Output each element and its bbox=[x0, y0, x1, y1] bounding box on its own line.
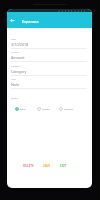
button[interactable]: EXIT bbox=[58, 162, 69, 170]
button[interactable]: SAVE bbox=[41, 162, 53, 170]
staticText: Date bbox=[11, 38, 16, 41]
button[interactable]: Date bbox=[11, 38, 87, 51]
button[interactable]: Monthly bbox=[59, 105, 74, 112]
staticText: Note bbox=[11, 82, 20, 87]
staticText: EXIT bbox=[60, 164, 67, 168]
staticText: Daily bbox=[20, 107, 26, 110]
staticText: Monthly bbox=[64, 107, 74, 110]
button[interactable]: Note bbox=[11, 78, 87, 91]
staticText: Amount bbox=[11, 51, 20, 54]
button[interactable]: Back bbox=[7, 13, 19, 27]
button[interactable]: DELETE bbox=[21, 162, 36, 170]
staticText: Note bbox=[11, 78, 17, 81]
staticText: 3/10/2018 bbox=[11, 42, 29, 47]
button[interactable]: Amount bbox=[11, 51, 87, 64]
staticText: Amount bbox=[11, 55, 25, 60]
staticText: Category bbox=[11, 69, 27, 74]
staticText: Repeat bbox=[11, 97, 19, 100]
staticText: Weekly bbox=[42, 107, 50, 110]
button[interactable]: Weekly bbox=[37, 105, 50, 112]
button[interactable]: Daily bbox=[15, 105, 26, 112]
staticText: DELETE bbox=[23, 164, 34, 168]
button[interactable]: Category bbox=[11, 65, 87, 78]
staticText: Category bbox=[11, 65, 21, 68]
staticText: Expenses bbox=[22, 19, 39, 24]
staticText: SAVE bbox=[43, 164, 51, 168]
